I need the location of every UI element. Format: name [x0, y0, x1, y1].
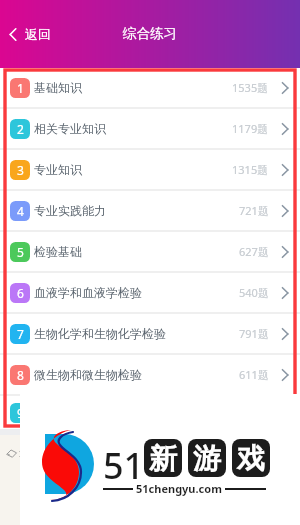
staticText: 791题: [239, 326, 269, 341]
button[interactable]: 8: [0, 355, 300, 394]
staticText: 收藏: [92, 446, 112, 459]
button[interactable]: 2: [0, 109, 300, 148]
staticText: 检验基础: [34, 244, 82, 259]
staticText: 专业知识: [34, 162, 82, 177]
button[interactable]: 9: [0, 396, 300, 429]
staticText: 9: [17, 405, 24, 421]
button[interactable]: 6: [0, 273, 300, 312]
staticText: 51chengyu.com: [136, 481, 222, 496]
staticText: 2: [17, 121, 24, 137]
staticText: 新: [149, 441, 177, 476]
staticText: 游: [193, 441, 221, 476]
button[interactable]: 1: [0, 68, 300, 107]
staticText: 51: [103, 441, 145, 490]
staticText: 4: [17, 203, 24, 219]
staticText: 6: [17, 285, 24, 301]
button[interactable]: 返回: [6, 20, 54, 48]
staticText: 721题: [239, 203, 269, 218]
staticText: 生物化学和生物化学检验: [34, 326, 166, 341]
staticText: 基础知识: [34, 80, 82, 95]
button[interactable]: 我的: [226, 435, 300, 525]
button[interactable]: 7: [0, 314, 300, 353]
staticText: 5: [17, 244, 24, 260]
staticText: 627题: [239, 244, 269, 259]
staticText: 专业实践能力: [34, 203, 106, 218]
staticText: 1535题: [232, 80, 269, 95]
staticText: 1315题: [232, 162, 269, 177]
staticText: 1: [17, 80, 24, 96]
staticText: 3: [17, 162, 24, 178]
button[interactable]: 错题: [152, 435, 226, 525]
staticText: 7: [17, 326, 24, 342]
staticText: 选题: [19, 446, 39, 459]
button[interactable]: 5: [0, 232, 300, 271]
staticText: 611题: [239, 367, 269, 382]
button[interactable]: 3: [0, 150, 300, 189]
staticText: 8: [17, 367, 24, 383]
button[interactable]: 4: [0, 191, 300, 230]
staticText: 血液学和血液学检验: [34, 285, 142, 300]
staticText: 综合练习: [123, 25, 177, 42]
staticText: 返回: [25, 26, 51, 42]
button[interactable]: 收藏: [79, 435, 152, 525]
staticText: 戏: [237, 441, 265, 476]
staticText: 相关专业知识: [34, 121, 106, 136]
staticText: 我的: [239, 446, 259, 459]
staticText: 540题: [239, 285, 269, 300]
staticText: 错题: [165, 446, 185, 459]
staticText: 微生物和微生物检验: [34, 367, 142, 382]
staticText: 1179题: [232, 121, 269, 136]
button[interactable]: 选题: [6, 435, 79, 525]
